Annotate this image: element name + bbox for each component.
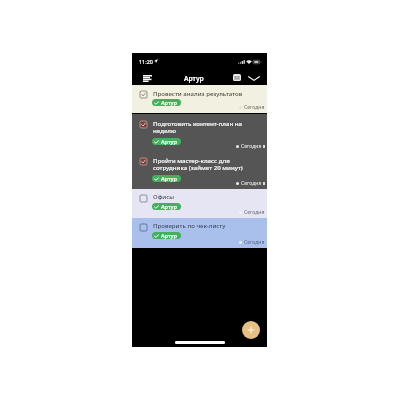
button[interactable]: Пройти мастер-класс для сотрудника (займ… — [132, 151, 267, 189]
staticText: Сегодня — [244, 104, 265, 111]
staticText: Артур — [161, 175, 177, 182]
staticText: Артур — [161, 232, 177, 239]
staticText: Подготовить контент-план на неделю — [153, 119, 265, 135]
staticText: Сегодня — [241, 143, 262, 150]
button[interactable]: Провести анализ результатов — [132, 85, 267, 113]
button[interactable]: Подготовить контент-план на неделю — [132, 114, 267, 152]
staticText: Сегодня — [241, 180, 262, 187]
button[interactable]: Sort — [139, 72, 155, 85]
staticText: Артур — [161, 138, 177, 145]
staticText: Проверить по чек-листу — [153, 221, 265, 229]
staticText: Артур — [161, 203, 177, 210]
staticText: Сегодня — [244, 239, 265, 246]
staticText: Офисы — [153, 192, 265, 200]
button[interactable]: Expand — [245, 72, 263, 85]
staticText: Сегодня — [244, 209, 265, 216]
staticText: Артур — [161, 99, 177, 106]
staticText: Провести анализ результатов — [153, 89, 265, 97]
button[interactable]: Add task — [242, 321, 260, 339]
button[interactable]: Проверить по чек-листу — [132, 218, 267, 248]
staticText: 11:20 — [139, 58, 153, 65]
button[interactable]: Calendar — [230, 71, 244, 84]
staticText: Пройти мастер-класс для сотрудника (займ… — [153, 156, 265, 172]
staticText: Артур — [184, 74, 204, 83]
button[interactable]: Офисы — [132, 189, 267, 218]
